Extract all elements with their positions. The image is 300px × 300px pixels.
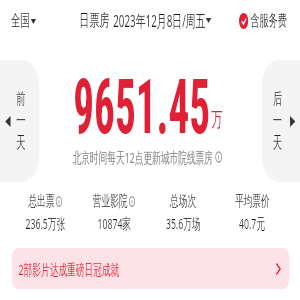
staticText: 万 bbox=[211, 107, 223, 132]
staticText: 40.7元 bbox=[239, 213, 265, 233]
staticText: 9651.45 bbox=[73, 62, 210, 151]
staticText: 35.6万场 bbox=[166, 213, 201, 233]
staticText: 总场次 bbox=[170, 192, 196, 211]
button[interactable]: 日票房 bbox=[79, 9, 211, 32]
staticText: 一 bbox=[16, 111, 26, 131]
staticText: 236.5万张 bbox=[26, 213, 66, 233]
staticText: 日票房 bbox=[79, 10, 109, 31]
staticText: 后 bbox=[273, 89, 282, 109]
staticText: 2部影片达成重磅日冠成就 bbox=[19, 259, 119, 279]
staticText: 天 bbox=[16, 133, 26, 153]
button[interactable]: 含服务费 bbox=[239, 11, 287, 31]
staticText: 含服务费 bbox=[250, 11, 287, 31]
button[interactable]: 全国 bbox=[11, 11, 36, 31]
staticText: 天 bbox=[273, 133, 282, 153]
staticText: 10874家 bbox=[97, 213, 131, 233]
staticText: 2023年12月8日/周五 bbox=[113, 9, 206, 32]
staticText: 平均票价 bbox=[235, 192, 270, 211]
button[interactable]: 前一天 bbox=[0, 60, 39, 182]
staticText: 总出票 bbox=[28, 192, 55, 211]
staticText: 北京时间每天12点更新城市院线票房 bbox=[72, 147, 213, 167]
staticText: 全国 bbox=[11, 11, 30, 31]
button[interactable]: 2部影片达成重磅日冠成就 bbox=[12, 248, 289, 289]
staticText: 一 bbox=[273, 111, 282, 131]
button[interactable]: 后一天 bbox=[262, 60, 300, 182]
staticText: 前 bbox=[16, 89, 26, 109]
staticText: 营业影院 bbox=[93, 192, 128, 211]
